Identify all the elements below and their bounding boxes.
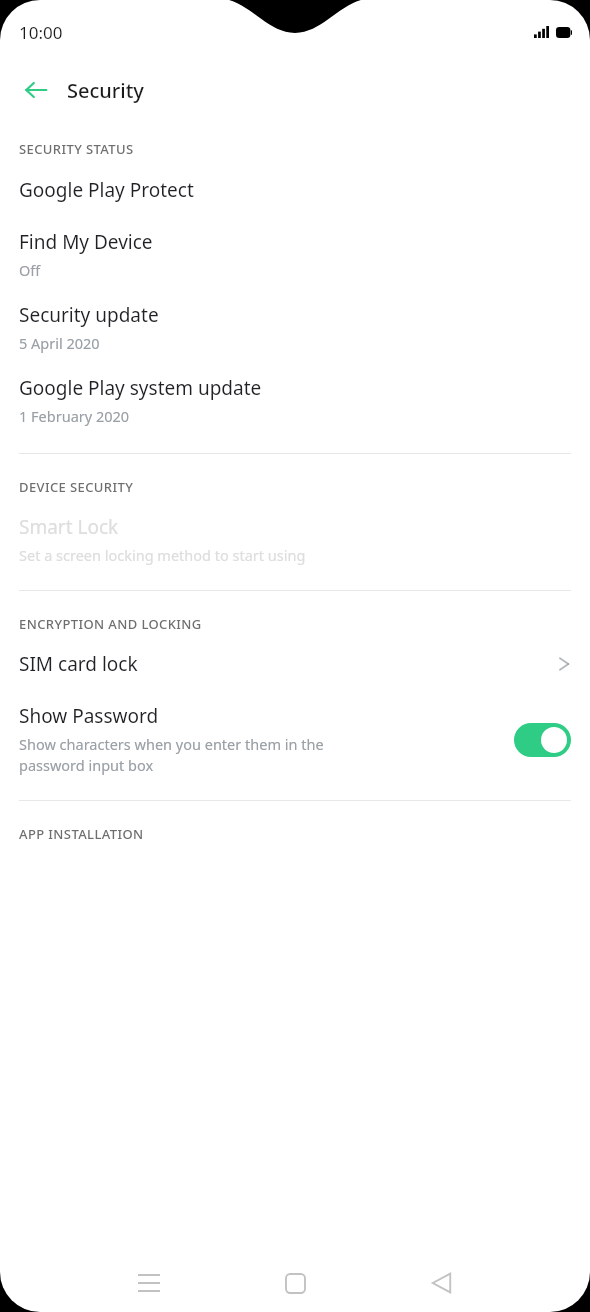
staticText: Set a screen locking method to start usi… <box>19 545 306 565</box>
staticText: 5 April 2020 <box>19 333 100 353</box>
staticText: ENCRYPTION AND LOCKING <box>19 615 202 633</box>
button[interactable]: Recent apps <box>123 1257 175 1309</box>
button[interactable]: Back <box>415 1257 467 1309</box>
button[interactable]: Google Play Protect <box>0 175 590 205</box>
staticText: 10:00 <box>19 21 63 44</box>
button[interactable]: SIM card lock <box>0 649 590 679</box>
staticText: Find My Device <box>19 229 153 255</box>
button[interactable]: Google Play system update <box>0 373 590 428</box>
staticText: Show Password <box>19 703 159 729</box>
button[interactable]: Smart Lock <box>0 512 590 567</box>
button[interactable]: Find My Device <box>0 227 590 282</box>
staticText: SECURITY STATUS <box>19 140 134 158</box>
button[interactable]: Show Password <box>0 701 590 778</box>
staticText: SIM card lock <box>19 651 138 677</box>
button[interactable]: Security update <box>0 300 590 355</box>
button[interactable]: Home <box>269 1257 321 1309</box>
staticText: DEVICE SECURITY <box>19 478 134 496</box>
staticText: APP INSTALLATION <box>19 825 144 843</box>
staticText: Smart Lock <box>19 514 119 540</box>
staticText: Show characters when you enter them in t… <box>19 734 324 776</box>
staticText: Off <box>19 260 41 280</box>
staticText: 1 February 2020 <box>19 406 130 426</box>
staticText: Google Play system update <box>19 375 262 401</box>
staticText: Security <box>67 77 144 104</box>
staticText: Security update <box>19 302 159 328</box>
staticText: Google Play Protect <box>19 177 194 203</box>
button[interactable]: Back <box>14 68 58 112</box>
button[interactable]: Show Password toggle <box>514 723 571 757</box>
